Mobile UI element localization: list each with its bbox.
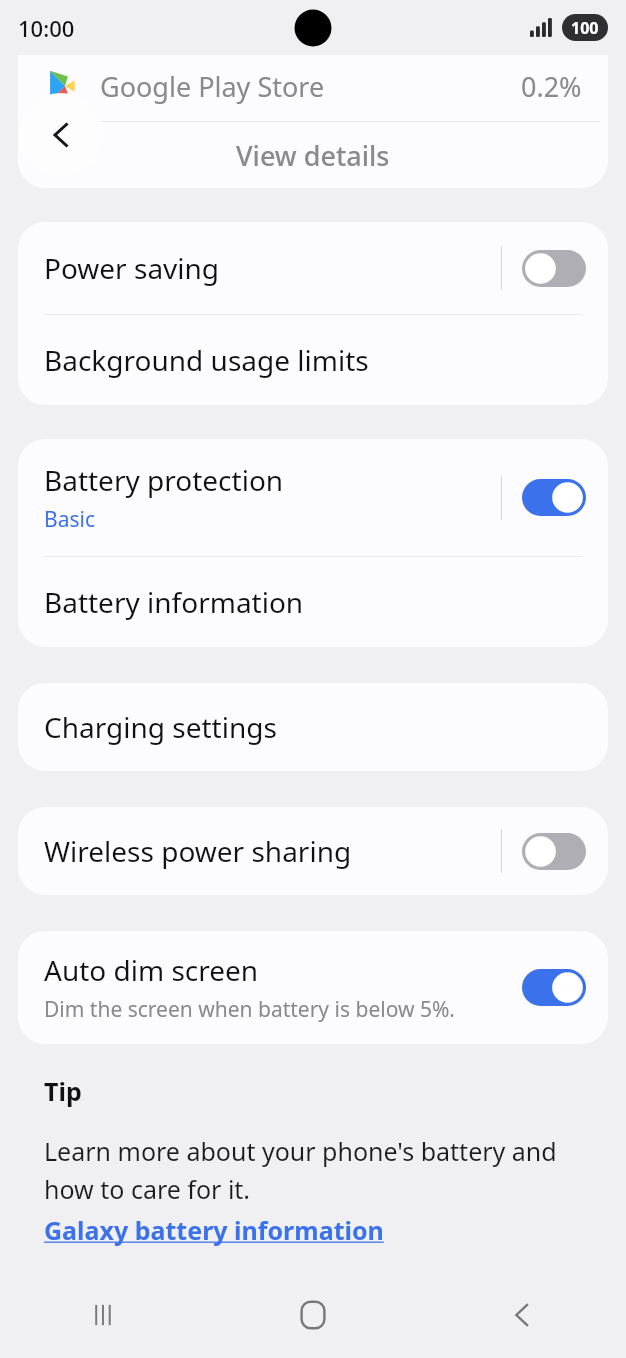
button[interactable]: Wireless power sharing — [18, 807, 608, 895]
staticText: 100 — [571, 17, 599, 39]
staticText: View details — [236, 137, 390, 174]
staticText: Background usage limits — [44, 341, 369, 379]
button[interactable]: Recents — [0, 1272, 208, 1358]
staticText: Tip — [44, 1074, 82, 1108]
staticText: 0.2% — [521, 68, 582, 105]
staticText: 10:00 — [18, 13, 75, 43]
staticText: Galaxy battery information — [44, 1213, 384, 1247]
button[interactable]: Back — [417, 1272, 626, 1358]
button[interactable]: Home — [208, 1272, 417, 1358]
staticText: Dim the screen when battery is below 5%. — [44, 995, 455, 1024]
staticText: Power saving — [44, 249, 220, 287]
button[interactable]: Power saving — [18, 222, 608, 314]
button[interactable]: Switch on — [522, 969, 586, 1006]
staticText: Google Play Store — [100, 68, 325, 105]
button[interactable]: Battery information — [18, 557, 608, 647]
button[interactable]: Switch on — [522, 479, 586, 516]
staticText: Learn more about your phone's battery an… — [44, 1134, 582, 1206]
button[interactable]: Switch off — [522, 833, 586, 870]
button[interactable]: Charging settings — [18, 683, 608, 771]
button[interactable]: Back — [19, 93, 103, 177]
button[interactable]: Background usage limits — [18, 315, 608, 405]
button[interactable]: Auto dim screen — [18, 931, 608, 1044]
button[interactable]: Switch off — [522, 250, 586, 287]
staticText: Wireless power sharing — [44, 832, 352, 870]
staticText: Battery protection — [44, 461, 284, 499]
button[interactable]: Battery protection — [18, 439, 608, 556]
staticText: Charging settings — [44, 708, 277, 746]
button[interactable]: Galaxy battery information — [44, 1213, 384, 1247]
button[interactable]: Google Play Store — [18, 55, 608, 117]
staticText: Basic — [44, 505, 95, 534]
staticText: Auto dim screen — [44, 951, 259, 989]
button[interactable]: View details — [18, 122, 608, 188]
staticText: Battery information — [44, 583, 304, 621]
